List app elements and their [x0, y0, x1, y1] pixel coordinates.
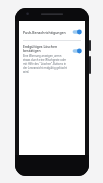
staticText: Endgültiges Löschen bestätigen [23, 44, 69, 53]
button[interactable]: Toggle on [72, 29, 82, 35]
staticText: Push-Benachrichtigungen [23, 30, 69, 35]
button[interactable]: Toggle on [72, 48, 82, 54]
button[interactable]: Push-Benachrichtigungen [19, 28, 85, 37]
staticText: Eine Warnung anzeigen, wenn etwas durch … [23, 54, 69, 74]
button[interactable]: Endgültiges Löschen bestätigen [19, 44, 85, 76]
